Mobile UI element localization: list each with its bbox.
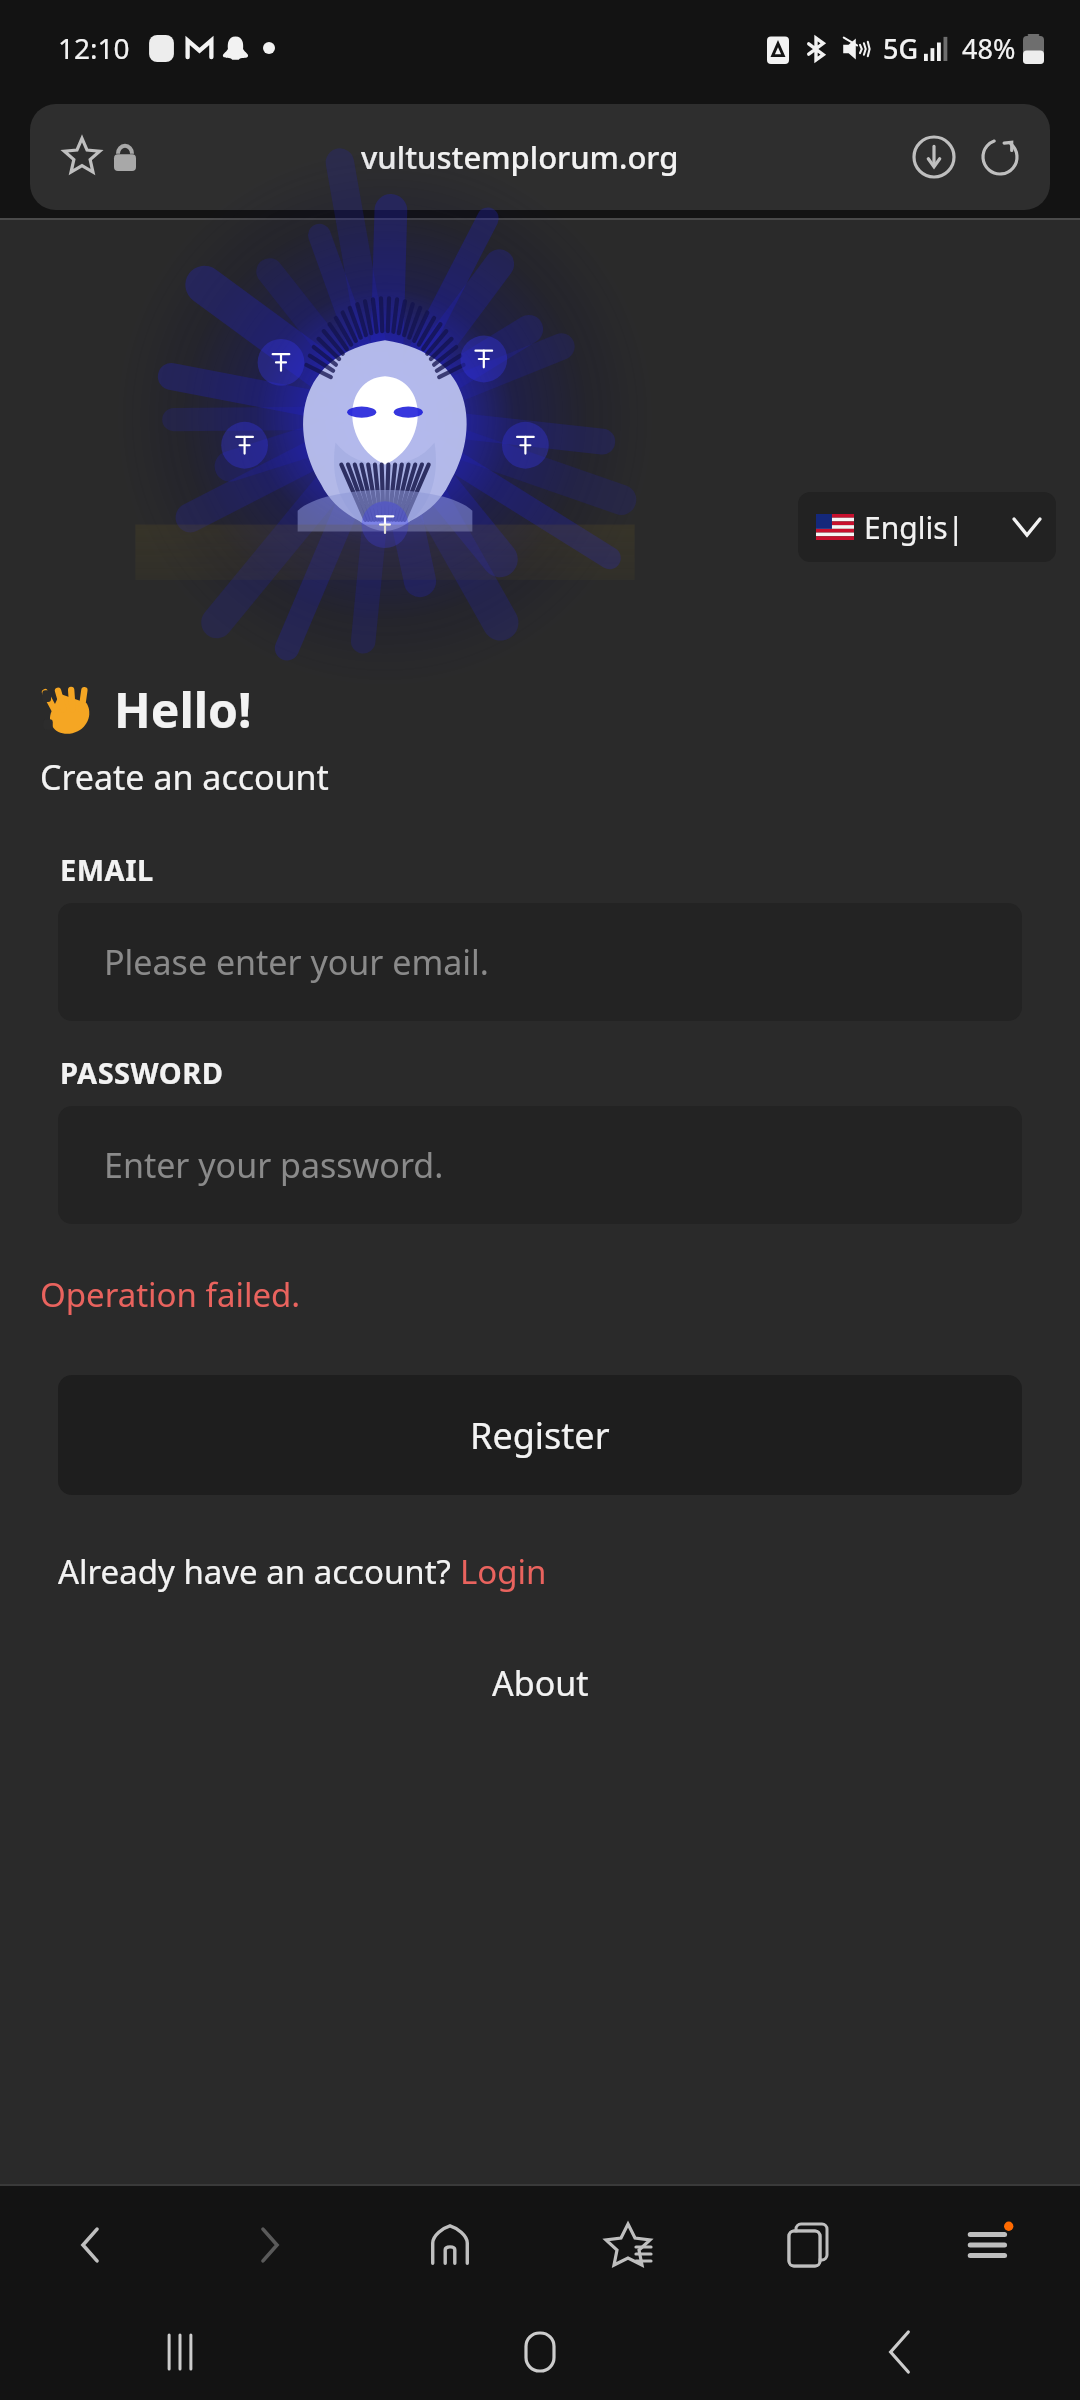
staticText: PASSWORD: [60, 1053, 224, 1092]
staticText: Enter your password.: [104, 1142, 444, 1188]
staticText: Login: [460, 1549, 547, 1594]
button[interactable]: Recents: [0, 2304, 360, 2400]
button[interactable]: Reload: [970, 127, 1030, 187]
staticText: Already have an account?: [58, 1549, 460, 1594]
staticText: 48%: [962, 30, 1016, 67]
button[interactable]: Downloads: [904, 127, 964, 187]
staticText: Hello!: [114, 677, 252, 742]
staticText: Create an account: [40, 754, 329, 800]
button[interactable]: Forward: [180, 2186, 360, 2304]
button[interactable]: Menu: [900, 2186, 1080, 2304]
button[interactable]: Login: [460, 1549, 547, 1594]
staticText: EMAIL: [60, 850, 154, 889]
staticText: Englis|: [864, 507, 965, 548]
button[interactable]: Bookmarks: [540, 2186, 720, 2304]
staticText: 12:10: [58, 29, 130, 67]
staticText: Please enter your email.: [104, 939, 489, 985]
button[interactable]: Please enter your email.: [58, 903, 1022, 1021]
button[interactable]: Back: [0, 2186, 180, 2304]
staticText: 5G: [883, 30, 919, 67]
button[interactable]: Register: [58, 1375, 1022, 1495]
button[interactable]: Bookmark: [54, 129, 110, 185]
button[interactable]: About: [472, 1652, 609, 1714]
button[interactable]: Home: [360, 2304, 720, 2400]
button[interactable]: Back: [720, 2304, 1080, 2400]
button[interactable]: Enter your password.: [58, 1106, 1022, 1224]
staticText: About: [492, 1660, 589, 1706]
button[interactable]: Englis|: [798, 492, 1056, 562]
staticText: Register: [470, 1411, 610, 1460]
button[interactable]: Home: [360, 2186, 540, 2304]
staticText: Operation failed.: [40, 1272, 301, 1317]
button[interactable]: Tabs: [720, 2186, 900, 2304]
button[interactable]: Address bar: [30, 104, 1050, 210]
staticText: vultustemplorum.org: [361, 136, 679, 178]
